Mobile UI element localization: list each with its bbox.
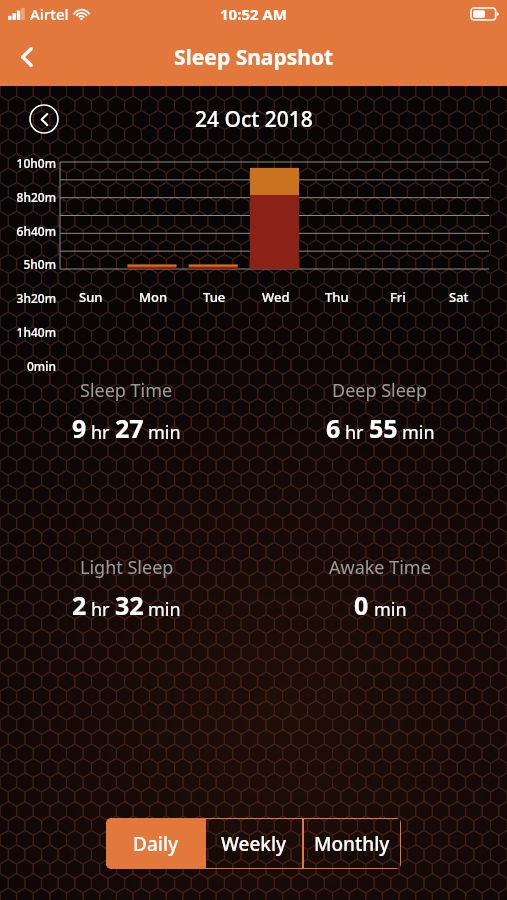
staticText: Daily bbox=[133, 831, 179, 857]
button[interactable]: Previous day bbox=[29, 104, 59, 134]
staticText: min bbox=[402, 420, 435, 445]
staticText: Monthly bbox=[314, 831, 390, 857]
staticText: 0min bbox=[0, 358, 56, 374]
staticText: Mon bbox=[139, 288, 168, 306]
staticText: Deep Sleep bbox=[332, 378, 428, 403]
staticText: 24 Oct 2018 bbox=[195, 105, 313, 134]
staticText: Sat bbox=[449, 288, 469, 306]
staticText: 10:52 AM bbox=[220, 4, 287, 24]
button[interactable]: Weekly bbox=[205, 818, 303, 869]
staticText: Thu bbox=[325, 288, 349, 306]
staticText: 2 bbox=[72, 588, 87, 622]
staticText: 6h40m bbox=[0, 223, 56, 239]
staticText: hr bbox=[91, 420, 110, 445]
staticText: Weekly bbox=[221, 831, 287, 857]
staticText: Awake Time bbox=[329, 555, 431, 580]
staticText: 32 bbox=[115, 588, 144, 622]
staticText: 1h40m bbox=[0, 324, 56, 340]
staticText: Wed bbox=[262, 288, 290, 306]
staticText: 3h20m bbox=[0, 290, 56, 306]
staticText: Airtel bbox=[30, 4, 69, 24]
staticText: 10h0m bbox=[0, 155, 56, 171]
staticText: Sun bbox=[79, 288, 103, 306]
staticText: Sleep Time bbox=[80, 378, 173, 403]
staticText: 5h0m bbox=[0, 256, 56, 272]
staticText: Tue bbox=[203, 288, 226, 306]
staticText: min bbox=[374, 597, 407, 622]
button[interactable]: Back bbox=[0, 30, 54, 84]
button[interactable]: Monthly bbox=[303, 818, 401, 869]
staticText: 0 bbox=[354, 588, 369, 622]
staticText: 8h20m bbox=[0, 189, 56, 205]
staticText: 9 bbox=[72, 411, 87, 445]
button[interactable]: Daily bbox=[106, 818, 205, 869]
staticText: 55 bbox=[369, 411, 398, 445]
staticText: Light Sleep bbox=[80, 555, 174, 580]
staticText: min bbox=[148, 420, 181, 445]
staticText: min bbox=[148, 597, 181, 622]
staticText: hr bbox=[91, 597, 110, 622]
staticText: Sleep Snapshot bbox=[174, 43, 334, 72]
staticText: 27 bbox=[115, 411, 144, 445]
staticText: hr bbox=[345, 420, 364, 445]
staticText: 6 bbox=[326, 411, 341, 445]
staticText: Fri bbox=[390, 288, 406, 306]
